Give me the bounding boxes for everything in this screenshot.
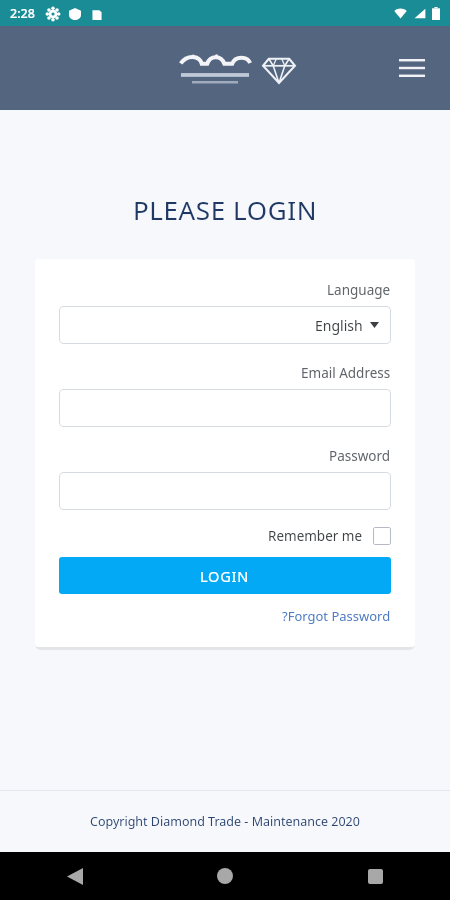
staticText: Language [327,281,391,299]
button[interactable] [59,389,391,427]
staticText: Copyright Diamond Trade - Maintenance 20… [90,813,360,830]
button[interactable]: Recent apps [300,852,450,900]
staticText: ?Forgot Password [282,607,391,625]
button[interactable]: Back [0,852,150,900]
button[interactable]: English [59,306,391,344]
button[interactable]: Open navigation menu [390,46,434,90]
button[interactable]: Remember me [59,527,391,545]
button[interactable] [59,472,391,510]
staticText: LOGIN [200,566,250,586]
staticText: PLEASE LOGIN [133,192,318,227]
staticText: 2:28 [10,5,35,22]
staticText: Email Address [301,364,391,382]
staticText: Password [329,447,391,465]
button[interactable]: LOGIN [59,557,391,594]
button[interactable]: Home [150,852,300,900]
staticText: English [315,316,363,335]
button[interactable]: ?Forgot Password [282,607,391,625]
staticText: Remember me [268,527,363,545]
